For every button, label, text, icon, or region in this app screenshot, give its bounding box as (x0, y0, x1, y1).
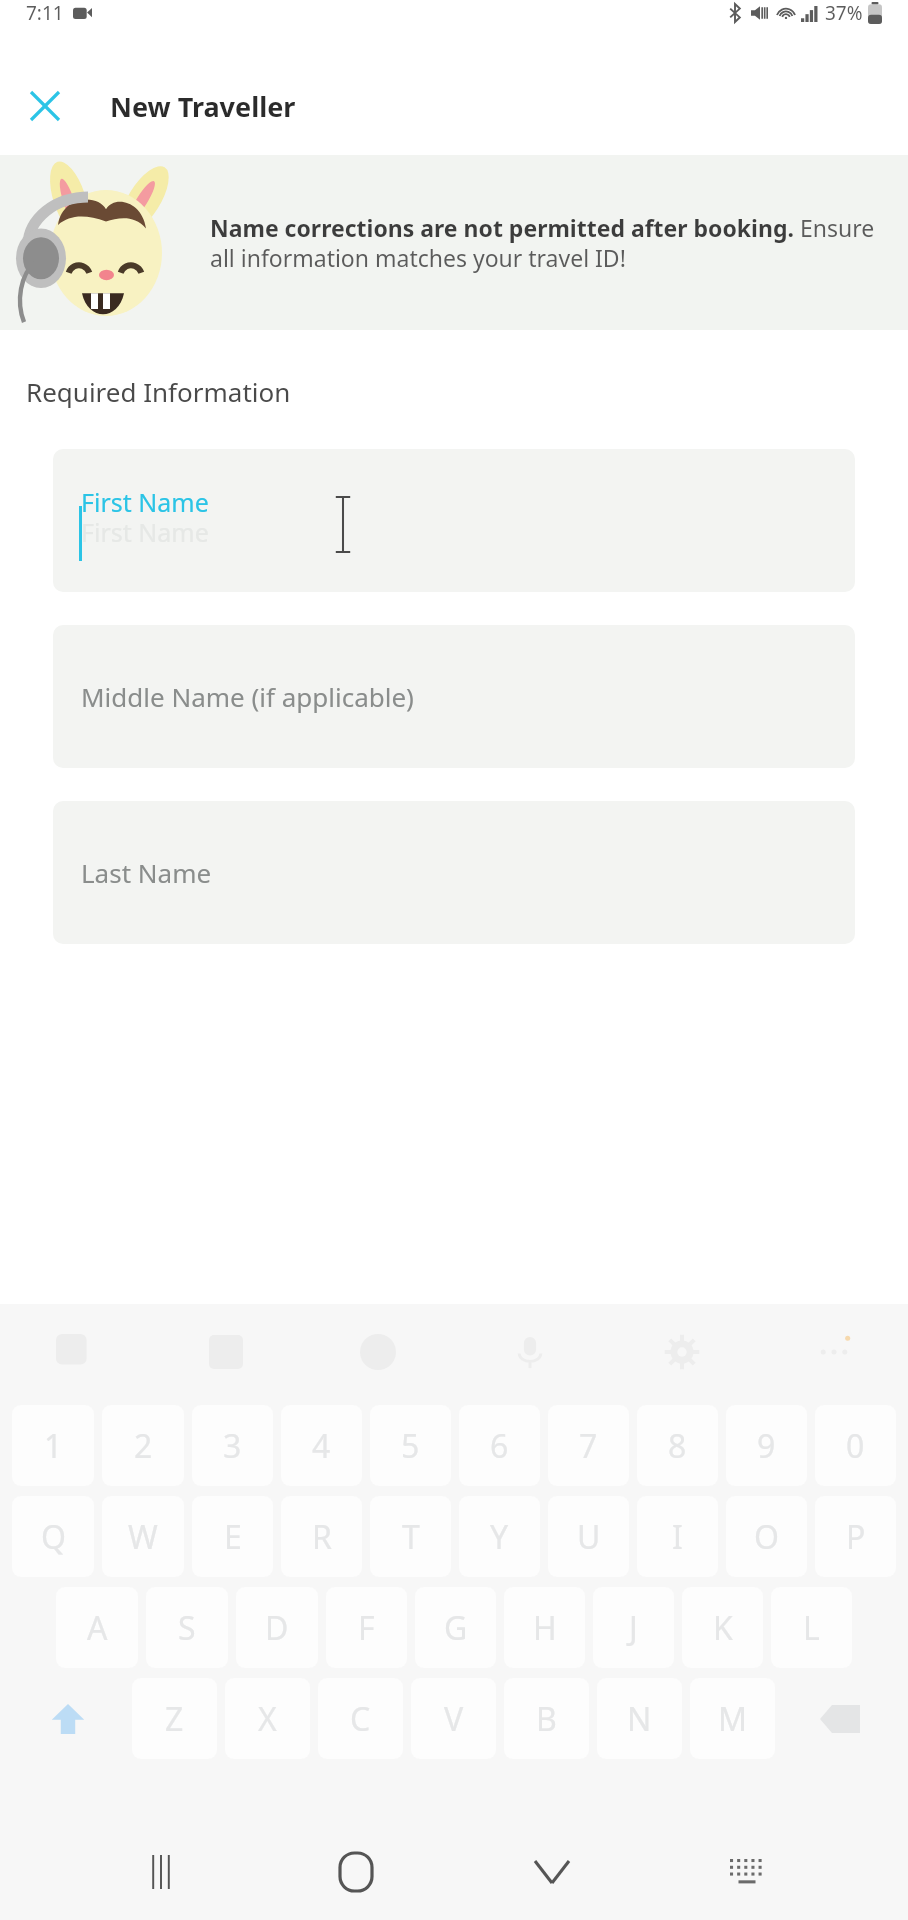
button[interactable]: Y (459, 1496, 540, 1577)
button[interactable]: 0 (815, 1405, 896, 1486)
button[interactable]: K (682, 1587, 763, 1668)
staticText: Required Information (26, 374, 291, 409)
button[interactable]: V (411, 1678, 496, 1759)
button[interactable]: 9 (726, 1405, 807, 1486)
button[interactable]: W (102, 1496, 184, 1577)
button[interactable]: U (548, 1496, 629, 1577)
staticText: A (87, 1606, 108, 1650)
button[interactable]: 8 (637, 1405, 718, 1486)
staticText: C (350, 1697, 371, 1741)
button[interactable]: D (236, 1587, 318, 1668)
staticText: 9 (757, 1424, 776, 1468)
staticText: New Traveller (110, 88, 296, 125)
staticText: B (536, 1697, 557, 1741)
button[interactable]: F (326, 1587, 407, 1668)
staticText: 3 (223, 1424, 242, 1468)
button[interactable]: X (225, 1678, 310, 1759)
button[interactable]: Q (12, 1496, 94, 1577)
button[interactable]: A (56, 1587, 138, 1668)
staticText: Q (41, 1515, 66, 1559)
button[interactable]: M (690, 1678, 775, 1759)
button[interactable]: 4 (281, 1405, 362, 1486)
button[interactable]: 2 (102, 1405, 184, 1486)
button[interactable]: 6 (459, 1405, 540, 1486)
button[interactable]: First Name (53, 449, 855, 592)
button[interactable]: Hide keyboard (517, 1837, 587, 1907)
staticText: First Name (81, 515, 209, 549)
staticText: Name corrections are not permitted after… (210, 212, 878, 274)
button[interactable]: S (146, 1587, 228, 1668)
button[interactable]: B (504, 1678, 589, 1759)
staticText: L (803, 1606, 820, 1650)
staticText: Middle Name (if applicable) (81, 679, 414, 714)
button[interactable]: Switch keyboard (712, 1837, 782, 1907)
staticText: E (224, 1515, 242, 1559)
staticText: Z (165, 1697, 184, 1741)
staticText: 7:11 (26, 0, 64, 26)
staticText: 7 (579, 1424, 598, 1468)
staticText: 1 (44, 1424, 63, 1468)
button[interactable]: H (504, 1587, 585, 1668)
staticText: 2 (134, 1424, 153, 1468)
button[interactable]: P (815, 1496, 896, 1577)
button[interactable]: Sticker (44, 1322, 104, 1382)
button[interactable]: C (318, 1678, 403, 1759)
staticText: H (533, 1606, 557, 1650)
staticText: 6 (490, 1424, 509, 1468)
button[interactable]: Middle Name (if applicable) (53, 625, 855, 768)
staticText: 4 (312, 1424, 331, 1468)
button[interactable]: Backspace (779, 1673, 900, 1764)
staticText: W (128, 1515, 158, 1559)
staticText: O (754, 1515, 779, 1559)
staticText: J (629, 1606, 638, 1650)
button[interactable]: Home (321, 1837, 391, 1907)
staticText: V (444, 1697, 464, 1741)
staticText: 5 (401, 1424, 420, 1468)
staticText: K (713, 1606, 733, 1650)
button[interactable]: O (726, 1496, 807, 1577)
button[interactable]: Emoji (348, 1322, 408, 1382)
staticText: 0 (846, 1424, 865, 1468)
staticText: 37% (825, 0, 863, 26)
staticText: M (718, 1697, 748, 1741)
button[interactable]: Shift (8, 1673, 128, 1764)
button[interactable]: Last Name (53, 801, 855, 944)
staticText: U (577, 1515, 601, 1559)
staticText: First Name (81, 485, 209, 519)
button[interactable]: 5 (370, 1405, 451, 1486)
staticText: 8 (668, 1424, 687, 1468)
button[interactable]: Close (14, 75, 76, 137)
staticText: G (444, 1606, 468, 1650)
button[interactable]: Z (132, 1678, 217, 1759)
staticText: T (402, 1515, 420, 1559)
staticText: Last Name (81, 855, 212, 890)
staticText: S (178, 1606, 196, 1650)
button[interactable]: E (192, 1496, 273, 1577)
button[interactable]: R (281, 1496, 362, 1577)
button[interactable]: G (415, 1587, 496, 1668)
button[interactable]: More options (804, 1322, 864, 1382)
staticText: R (312, 1515, 332, 1559)
staticText: N (627, 1697, 652, 1741)
button[interactable]: GIF (196, 1322, 256, 1382)
button[interactable]: Recents (126, 1837, 196, 1907)
button[interactable]: N (597, 1678, 682, 1759)
staticText: X (258, 1697, 277, 1741)
button[interactable]: Keyboard settings (652, 1322, 712, 1382)
staticText: D (265, 1606, 289, 1650)
staticText: F (358, 1606, 375, 1650)
staticText: I (672, 1515, 683, 1559)
staticText: P (846, 1515, 866, 1559)
staticText: Y (490, 1515, 509, 1559)
button[interactable]: 3 (192, 1405, 273, 1486)
